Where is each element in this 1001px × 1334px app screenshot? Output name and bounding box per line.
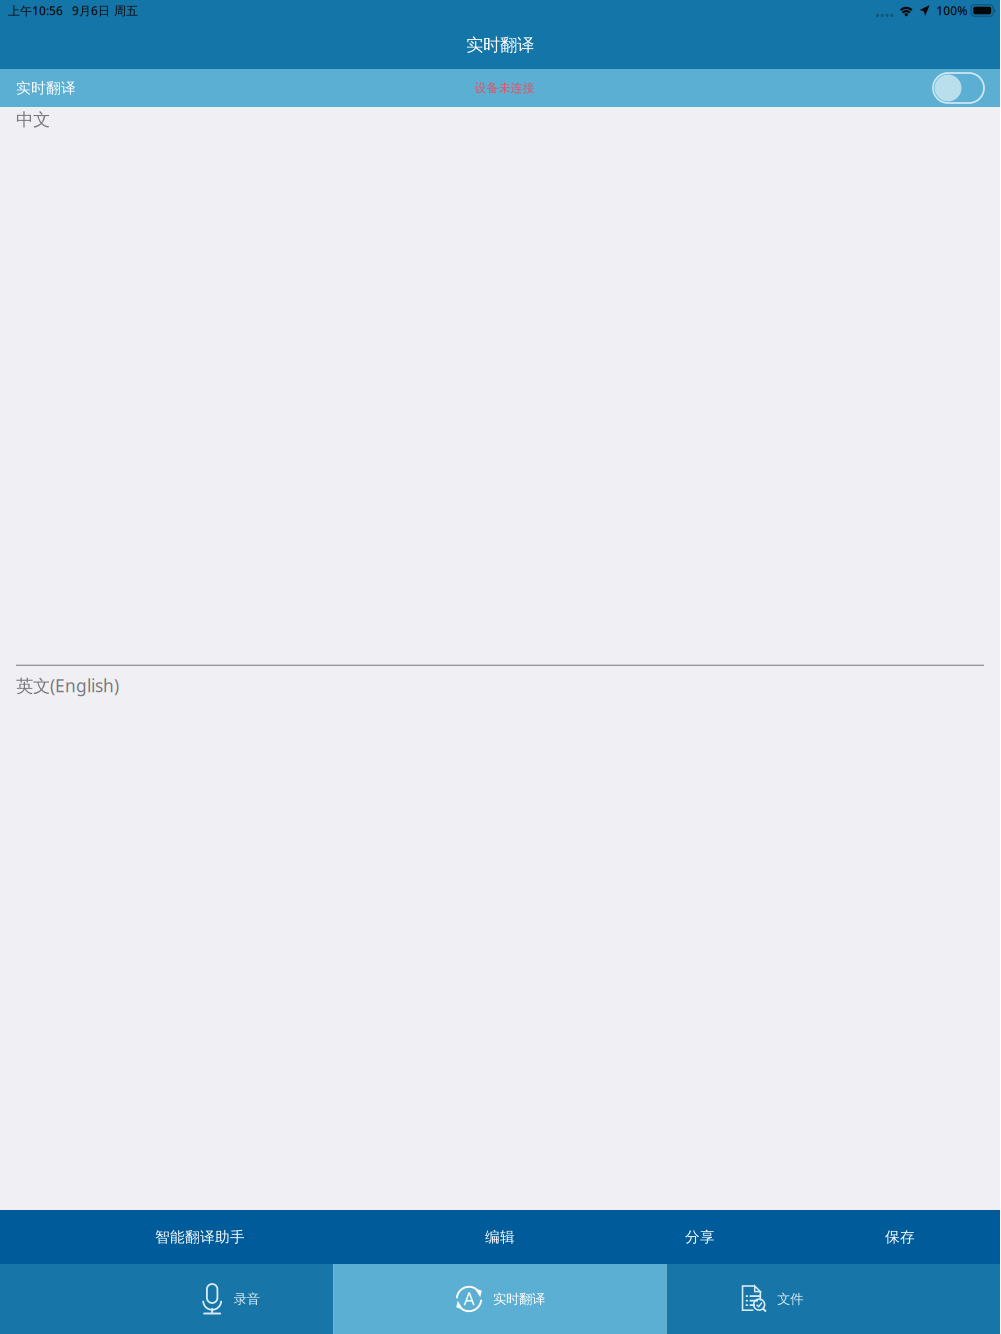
staticText: 实时翻译 bbox=[466, 34, 534, 56]
button[interactable]: 编辑 bbox=[400, 1210, 600, 1264]
staticText: 中文 bbox=[16, 109, 50, 130]
staticText: 录音 bbox=[234, 1291, 260, 1307]
staticText: 上午10:56 9月6日 周五 bbox=[8, 2, 138, 18]
staticText: 100% bbox=[936, 2, 967, 18]
button[interactable]: 智能翻译助手 bbox=[0, 1210, 400, 1264]
button[interactable]: 保存 bbox=[800, 1210, 1000, 1264]
button[interactable]: A bbox=[333, 1264, 667, 1334]
staticText: 英文(English) bbox=[16, 674, 119, 697]
staticText: A bbox=[463, 1287, 474, 1310]
staticText: 智能翻译助手 bbox=[155, 1228, 245, 1246]
staticText: 文件 bbox=[777, 1291, 803, 1307]
staticText: 实时翻译 bbox=[16, 79, 76, 97]
button[interactable]: 实时翻译开关 bbox=[933, 73, 984, 103]
staticText: 保存 bbox=[885, 1228, 915, 1246]
staticText: 编辑 bbox=[485, 1228, 515, 1246]
button[interactable]: 分享 bbox=[600, 1210, 800, 1264]
staticText: 实时翻译 bbox=[493, 1291, 545, 1307]
button[interactable]: 录音 bbox=[0, 1264, 333, 1334]
button[interactable]: 文件 bbox=[667, 1264, 1000, 1334]
staticText: 分享 bbox=[685, 1228, 715, 1246]
staticText: 设备未连接 bbox=[474, 81, 534, 95]
